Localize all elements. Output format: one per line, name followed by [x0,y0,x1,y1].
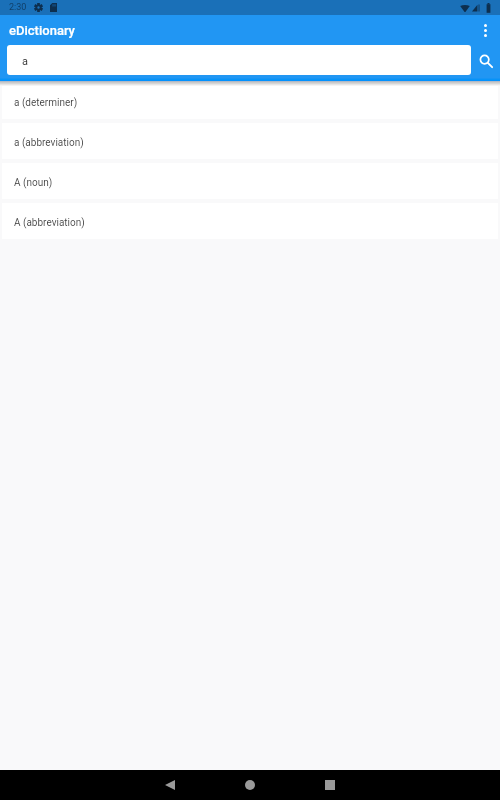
button[interactable]: a (abbreviation) [2,123,498,159]
button[interactable]: a [7,45,471,75]
button[interactable]: Search [471,45,500,75]
button[interactable]: A (noun) [2,163,498,199]
button[interactable]: More options [470,15,500,45]
button[interactable]: Back [144,770,195,800]
staticText: a (determiner) [14,97,78,109]
button[interactable]: Recent apps [305,770,355,800]
staticText: a (abbreviation) [14,137,84,149]
button[interactable]: Home [225,770,275,800]
button[interactable]: a (determiner) [2,83,498,119]
staticText: a [22,55,28,68]
staticText: 2:30 [9,2,27,13]
staticText: eDictionary [9,23,75,38]
button[interactable]: A (abbreviation) [2,203,498,239]
staticText: A (noun) [14,177,53,189]
staticText: A (abbreviation) [14,217,85,229]
